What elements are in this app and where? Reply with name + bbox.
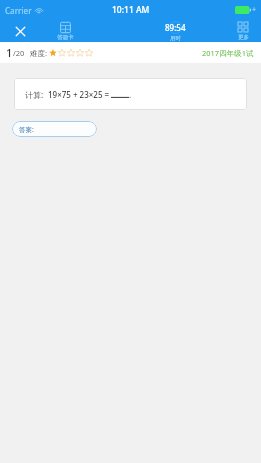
button[interactable]: 更多 (225, 20, 261, 42)
staticText: 难度: (30, 48, 48, 58)
staticText: 用时 (170, 35, 181, 42)
staticText: /20 (13, 48, 25, 58)
staticText: 89:54 (165, 22, 186, 33)
staticText: . (129, 89, 132, 100)
staticText: 19×75 + 23×25 = (48, 89, 110, 100)
staticText: 答案: (19, 125, 34, 134)
staticText: 答题卡 (57, 34, 74, 41)
button[interactable]: 89:54 (156, 20, 194, 42)
staticText: + (252, 5, 257, 15)
button[interactable]: 计算: (14, 78, 247, 110)
staticText: 更多 (238, 34, 249, 41)
staticText: 10:11 AM (112, 4, 150, 16)
staticText: 1 (6, 45, 13, 60)
button[interactable]: 答案: (12, 121, 97, 137)
staticText: 计算: (25, 89, 44, 100)
staticText: 2017四年级1试 (202, 48, 254, 58)
button[interactable]: 答题卡 (48, 20, 82, 42)
button[interactable]: Close (0, 20, 40, 42)
staticText: Carrier (5, 5, 32, 16)
